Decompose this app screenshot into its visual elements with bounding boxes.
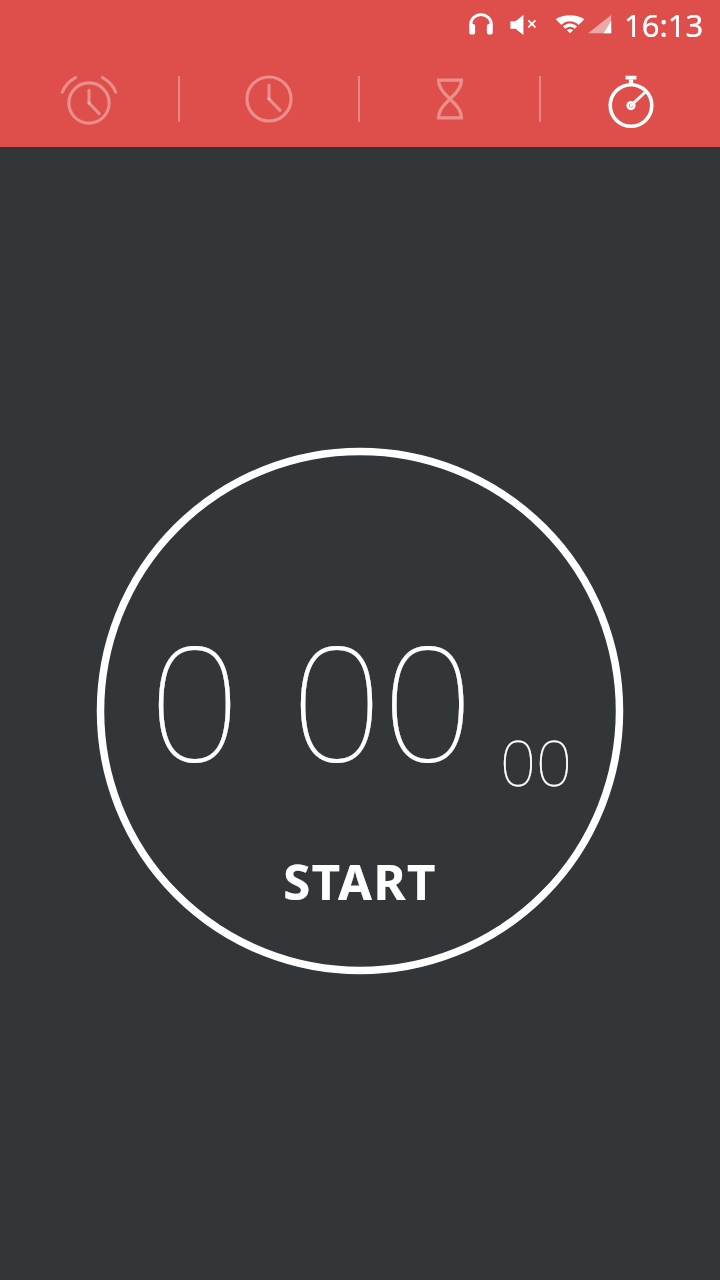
button[interactable]: Clock [180,50,358,147]
button[interactable]: Start stopwatch [97,448,623,974]
staticText: 0 [149,590,241,808]
staticText: 16:13 [624,4,704,46]
staticText: 00 [291,590,474,808]
staticText: 00 [500,719,572,805]
button[interactable]: Alarm [0,50,178,147]
button[interactable]: Stopwatch [541,50,720,147]
staticText: START [283,848,437,915]
button[interactable]: Timer [360,50,539,147]
